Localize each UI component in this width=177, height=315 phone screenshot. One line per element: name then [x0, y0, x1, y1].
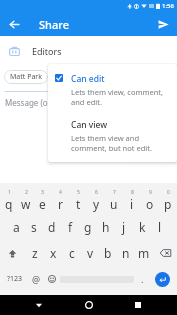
staticText: v [87, 245, 94, 261]
staticText: c [69, 245, 75, 261]
staticText: i [130, 196, 134, 212]
staticText: k [139, 219, 146, 235]
button[interactable]: Send [154, 15, 172, 33]
staticText: h [102, 219, 110, 235]
staticText: d [48, 219, 56, 235]
button[interactable]: 3 [34, 187, 51, 214]
button[interactable]: 5 [69, 187, 87, 214]
button[interactable]: f [61, 214, 79, 240]
staticText: 8 [131, 189, 134, 196]
button[interactable]: 0 [159, 187, 177, 214]
button[interactable]: m [135, 240, 153, 266]
staticText: Editors [32, 45, 62, 57]
staticText: p [164, 196, 172, 212]
button[interactable]: k [133, 214, 151, 240]
staticText: n [122, 245, 130, 261]
staticText: 4 [59, 189, 62, 196]
staticText: a [13, 219, 20, 235]
button[interactable]: c [63, 240, 81, 266]
staticText: y [93, 196, 100, 212]
staticText: 2 [25, 189, 28, 196]
staticText: s [31, 219, 37, 235]
button[interactable]: Enter [155, 272, 170, 287]
button[interactable]: l [151, 214, 169, 240]
staticText: e [39, 196, 46, 212]
button[interactable]: Recents [128, 295, 148, 315]
staticText: ?123 [7, 274, 23, 284]
button[interactable]: z [25, 240, 44, 266]
button[interactable]: Can view [48, 117, 177, 155]
staticText: 6 [95, 189, 98, 196]
staticText: 1:56 [162, 2, 174, 10]
staticText: Can view [71, 119, 108, 131]
button[interactable]: a [8, 214, 25, 240]
button[interactable]: Emoji [44, 266, 60, 292]
staticText: 7 [113, 189, 116, 196]
button[interactable]: 4 [51, 187, 69, 214]
button[interactable]: Back [5, 15, 23, 33]
button[interactable]: v [81, 240, 99, 266]
staticText: w [21, 196, 31, 212]
button[interactable]: 8 [123, 187, 141, 214]
button[interactable]: 9 [141, 187, 159, 214]
staticText: o [146, 196, 154, 212]
staticText: @ [32, 273, 41, 285]
button[interactable]: x [44, 240, 63, 266]
staticText: 9 [149, 189, 152, 196]
button[interactable]: 2 [17, 187, 34, 214]
button[interactable]: Backspace [153, 240, 177, 266]
button[interactable]: g [79, 214, 97, 240]
button[interactable]: h [97, 214, 115, 240]
button[interactable]: 7 [105, 187, 123, 214]
staticText: r [58, 196, 63, 212]
staticText: 0 [167, 189, 170, 196]
button[interactable]: d [43, 214, 61, 240]
button[interactable]: j [115, 214, 133, 240]
staticText: q [5, 196, 13, 212]
button[interactable]: 6 [87, 187, 105, 214]
staticText: Lets them view and comment, but not edit… [71, 133, 169, 153]
button[interactable]: Home [79, 295, 99, 315]
staticText: Can edit [71, 73, 105, 85]
staticText: Share [39, 17, 69, 32]
staticText: u [110, 196, 118, 212]
button[interactable]: 1 [0, 187, 17, 214]
button[interactable]: Back [29, 295, 49, 315]
staticText: g [84, 219, 92, 235]
button[interactable]: . [134, 266, 150, 292]
button[interactable]: b [99, 240, 117, 266]
button[interactable]: @ [28, 266, 44, 292]
staticText: x [50, 245, 57, 261]
staticText: z [32, 245, 38, 261]
button[interactable]: s [25, 214, 43, 240]
staticText: Message (optional) [5, 97, 77, 108]
button[interactable]: Matt Park [4, 70, 48, 84]
staticText: f [68, 219, 73, 235]
staticText: l [158, 219, 162, 235]
staticText: 5 [77, 189, 80, 196]
staticText: . [141, 273, 144, 285]
button[interactable]: ?123 [2, 266, 28, 292]
button[interactable]: Can edit [48, 71, 177, 109]
staticText: m [138, 245, 150, 261]
button[interactable]: n [117, 240, 135, 266]
button[interactable]: Shift [0, 240, 25, 266]
staticText: 1 [8, 189, 11, 196]
staticText: j [122, 219, 126, 235]
staticText: 3 [41, 189, 44, 196]
staticText: b [104, 245, 112, 261]
staticText: t [76, 196, 81, 212]
staticText: Matt Park [10, 72, 42, 82]
staticText: Lets them view, comment, and edit. [71, 87, 169, 107]
button[interactable]: Editors [0, 40, 177, 62]
